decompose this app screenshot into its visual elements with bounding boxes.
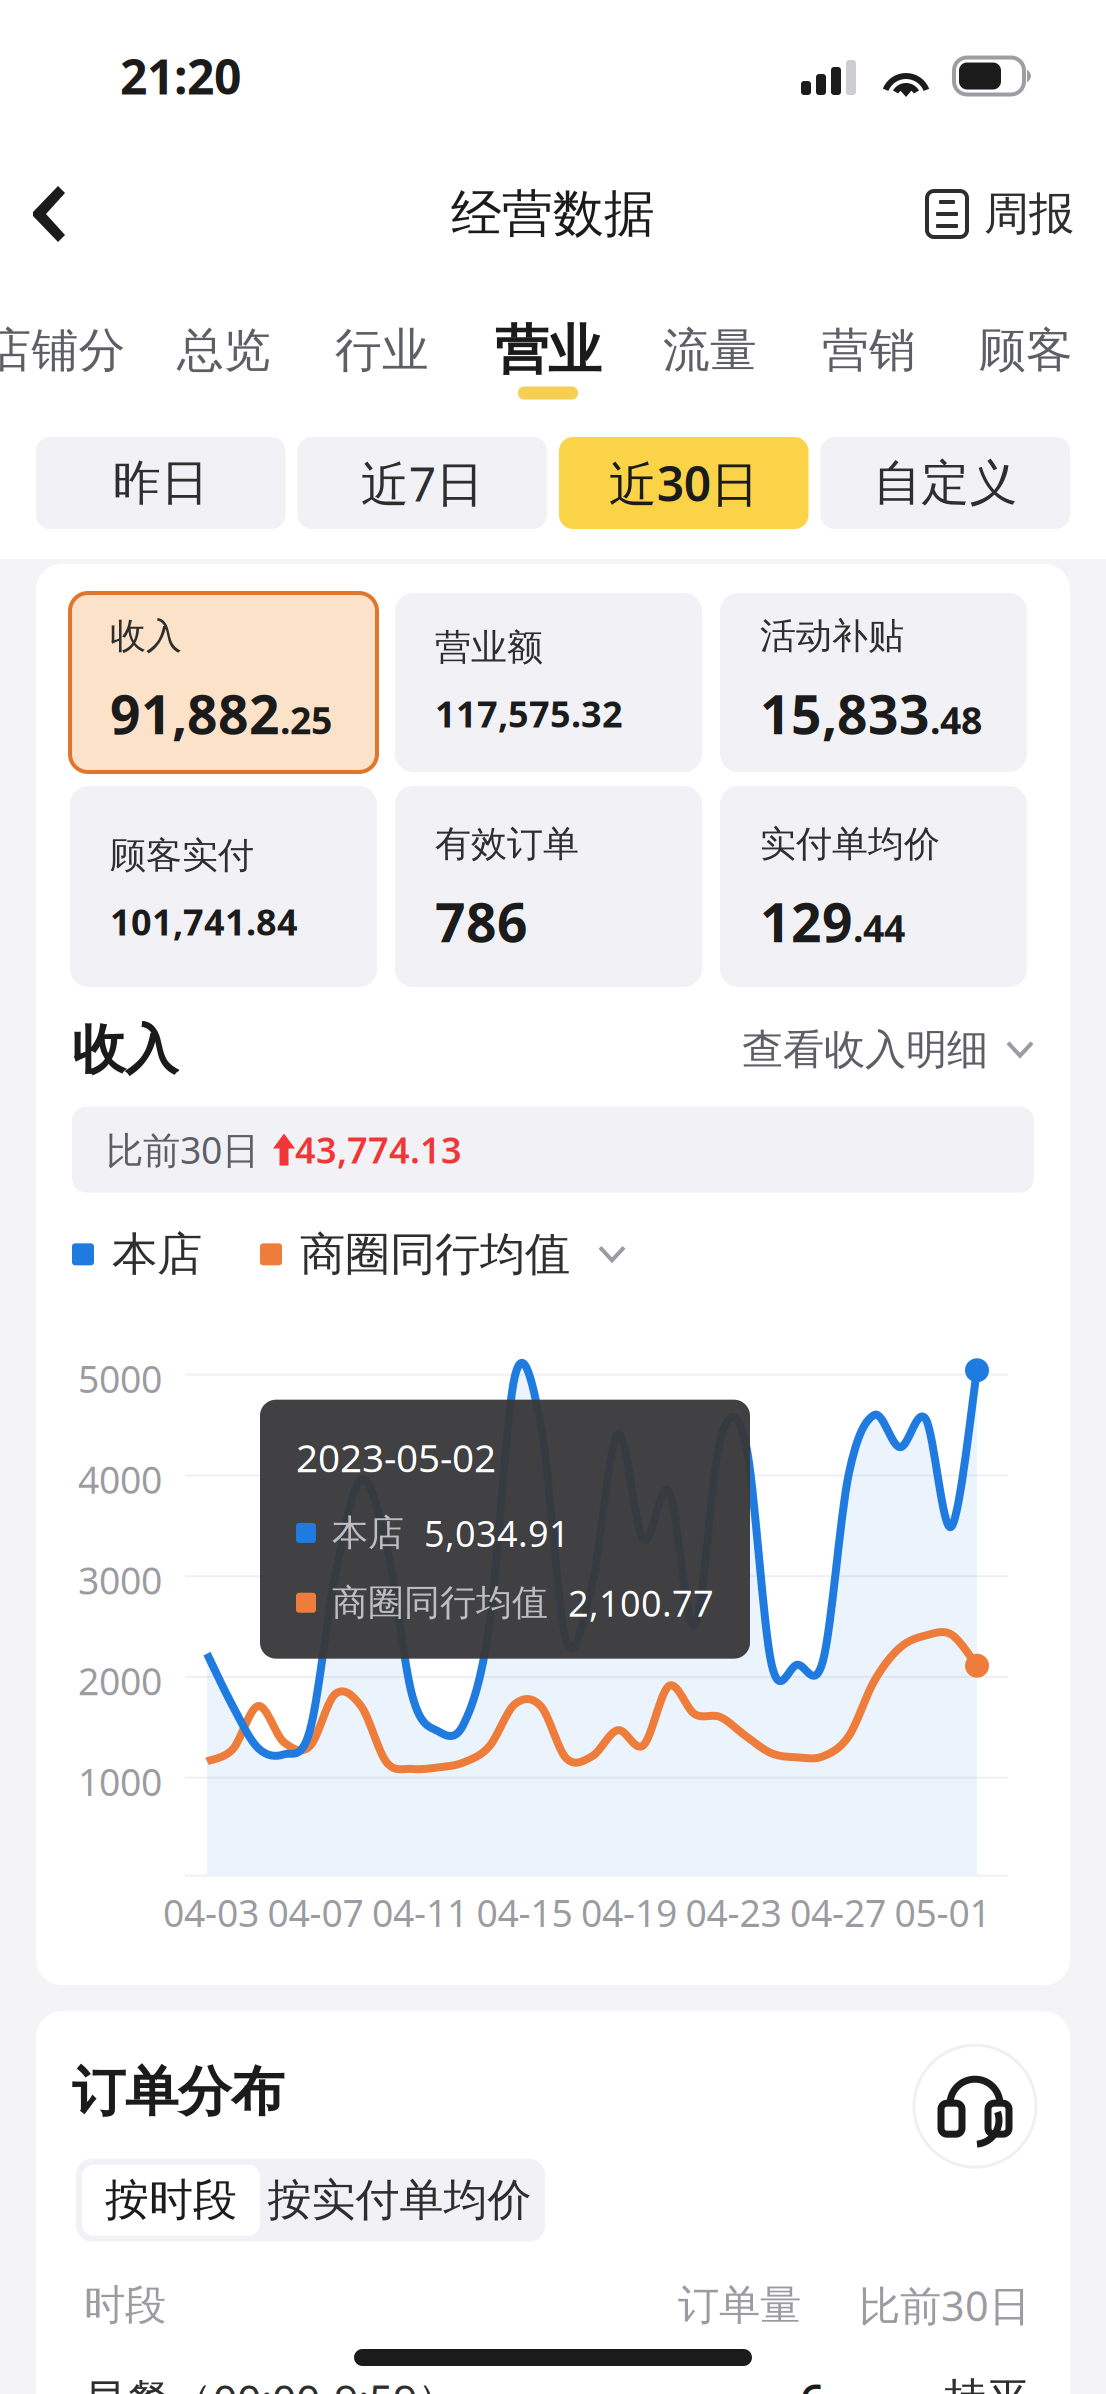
staticText: 近7日 bbox=[361, 451, 484, 515]
staticText: 昨日 bbox=[113, 453, 209, 512]
staticText: 自定义 bbox=[873, 453, 1017, 512]
button[interactable]: 总览 bbox=[124, 302, 324, 399]
staticText: 101,741.84 bbox=[110, 898, 298, 945]
button[interactable]: 店铺分 bbox=[0, 302, 155, 399]
staticText: 21:20 bbox=[120, 44, 241, 108]
staticText: 2,100.77 bbox=[568, 1579, 714, 1627]
staticText: 行业 bbox=[335, 322, 429, 379]
staticText: 持平 bbox=[944, 2373, 1030, 2394]
staticText: 5,034.91 bbox=[424, 1509, 570, 1557]
staticText: 15,833 bbox=[760, 678, 930, 749]
staticText: 有效订单 bbox=[435, 822, 579, 866]
button[interactable]: 收入 bbox=[70, 593, 377, 772]
staticText: 4000 bbox=[78, 1454, 162, 1504]
staticText: 04-03 bbox=[163, 1888, 259, 1937]
staticText: 流量 bbox=[663, 322, 757, 379]
staticText: 786 bbox=[435, 886, 528, 957]
staticText: 按实付单均价 bbox=[267, 2173, 531, 2227]
staticText: 04-23 bbox=[685, 1888, 781, 1937]
staticText: 117,575.32 bbox=[435, 690, 623, 737]
button[interactable]: 流量 bbox=[610, 302, 810, 399]
staticText: 早餐（00:00-9:59） bbox=[84, 2371, 460, 2394]
button[interactable]: 实付单均价 bbox=[720, 786, 1027, 987]
button[interactable]: 营业 bbox=[448, 302, 648, 399]
button[interactable]: 按时段 bbox=[82, 2165, 260, 2236]
staticText: 活动补贴 bbox=[760, 614, 904, 658]
staticText: 营销 bbox=[822, 322, 916, 379]
staticText: 04-19 bbox=[581, 1888, 677, 1937]
staticText: 实付单均价 bbox=[760, 822, 940, 866]
staticText: 比前30日 bbox=[859, 2278, 1030, 2333]
staticText: 近30日 bbox=[609, 451, 759, 515]
staticText: 查看收入明细 bbox=[742, 1024, 988, 1075]
button[interactable]: 近7日 bbox=[297, 437, 547, 529]
button[interactable]: 按实付单均价 bbox=[260, 2165, 539, 2236]
staticText: 订单分布 bbox=[72, 2059, 284, 2125]
staticText: 收入 bbox=[72, 1017, 178, 1082]
staticText: .25 bbox=[280, 695, 332, 745]
staticText: 6 bbox=[800, 2371, 824, 2394]
staticText: 04-15 bbox=[476, 1888, 572, 1937]
staticText: 04-07 bbox=[267, 1888, 363, 1937]
button[interactable]: 查看收入明细 bbox=[742, 1024, 1034, 1075]
staticText: 本店 bbox=[112, 1226, 202, 1282]
button[interactable]: 自定义 bbox=[820, 437, 1070, 529]
staticText: 顾客实付 bbox=[110, 833, 254, 878]
staticText: 5000 bbox=[78, 1354, 162, 1403]
staticText: 经营数据 bbox=[451, 183, 655, 245]
staticText: 订单量 bbox=[678, 2280, 801, 2331]
button[interactable]: 近30日 bbox=[559, 437, 808, 529]
staticText: 营业额 bbox=[435, 625, 543, 670]
button[interactable]: 顾客实付 bbox=[70, 786, 377, 987]
staticText: 时段 bbox=[84, 2280, 166, 2331]
button[interactable]: 顾客 bbox=[926, 302, 1106, 399]
staticText: 2000 bbox=[78, 1656, 162, 1705]
staticText: 43,774.13 bbox=[295, 1126, 462, 1173]
button[interactable]: 营销 bbox=[769, 302, 969, 399]
staticText: 129 bbox=[760, 886, 853, 957]
button[interactable]: 行业 bbox=[282, 302, 482, 399]
staticText: 顾客 bbox=[979, 322, 1073, 379]
staticText: 比前30日 bbox=[106, 1125, 259, 1174]
staticText: 05-01 bbox=[894, 1888, 990, 1937]
button[interactable]: 营业额 bbox=[395, 593, 702, 772]
staticText: 04-27 bbox=[790, 1888, 886, 1937]
staticText: 3000 bbox=[78, 1555, 162, 1605]
staticText: 商圈同行均值 bbox=[332, 1581, 548, 1625]
button[interactable]: Choose comparison series bbox=[570, 1245, 626, 1263]
staticText: 商圈同行均值 bbox=[300, 1226, 570, 1282]
staticText: 营业 bbox=[495, 318, 601, 383]
staticText: 本店 bbox=[332, 1511, 404, 1555]
staticText: 04-11 bbox=[372, 1888, 468, 1937]
button[interactable]: 昨日 bbox=[36, 437, 285, 529]
staticText: .44 bbox=[853, 903, 905, 953]
staticText: 总览 bbox=[177, 322, 271, 379]
button[interactable]: Customer service bbox=[914, 2045, 1036, 2167]
staticText: 店铺分 bbox=[0, 322, 125, 379]
staticText: 91,882 bbox=[110, 678, 280, 749]
staticText: 2023-05-02 bbox=[296, 1432, 496, 1483]
button[interactable]: 周报 bbox=[892, 158, 1106, 270]
staticText: 按时段 bbox=[105, 2173, 237, 2227]
staticText: .48 bbox=[930, 695, 982, 745]
button[interactable]: 有效订单 bbox=[395, 786, 702, 987]
staticText: 周报 bbox=[984, 186, 1074, 242]
button[interactable]: 活动补贴 bbox=[720, 593, 1027, 772]
staticText: 收入 bbox=[110, 614, 182, 658]
button[interactable]: Back bbox=[0, 158, 110, 270]
staticText: 1000 bbox=[78, 1757, 162, 1806]
